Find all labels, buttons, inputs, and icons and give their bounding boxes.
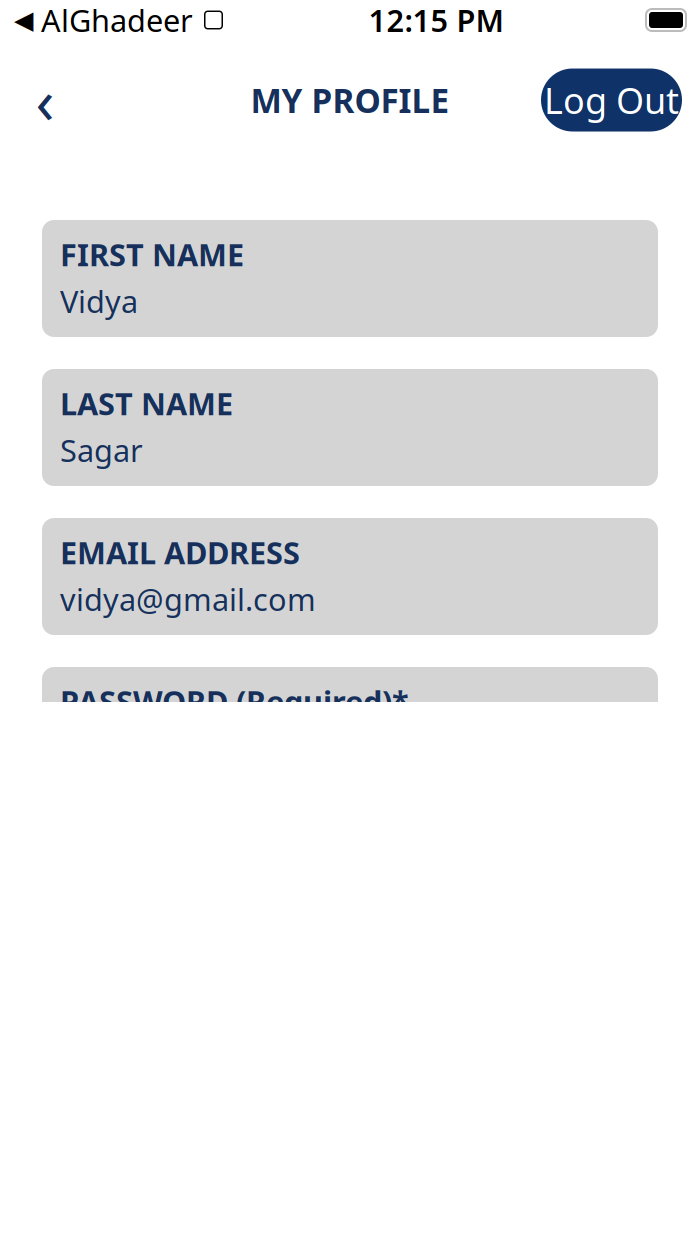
staticText: EMAIL ADDRESS (60, 532, 300, 573)
staticText: FIRST NAME (60, 234, 244, 275)
staticText: MY PROFILE (250, 78, 449, 122)
staticText: Vidya (60, 281, 138, 321)
staticText: ◀ (14, 6, 33, 34)
button[interactable]: Back (18, 70, 72, 130)
staticText: Log Out (544, 76, 679, 124)
button[interactable]: Log Out (541, 68, 682, 131)
staticText: ‹ (35, 59, 54, 141)
staticText: Sagar (60, 430, 143, 470)
staticText: AlGhadeer (33, 0, 201, 40)
staticText: LAST NAME (60, 383, 233, 424)
staticText: vidya@gmail.com (60, 579, 316, 619)
staticText: PASSWORD (Required)* (60, 681, 409, 722)
staticText: 12:15 PM (368, 0, 503, 40)
